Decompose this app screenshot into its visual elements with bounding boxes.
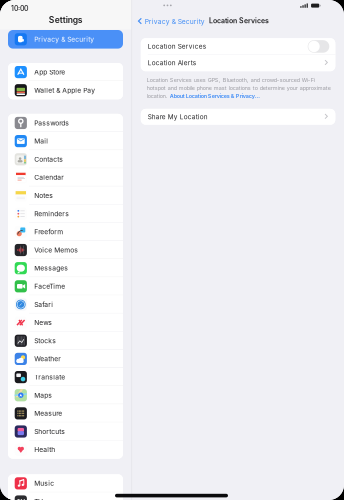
button[interactable]: Shortcuts <box>8 422 123 441</box>
staticText: News <box>34 319 52 327</box>
button[interactable]: Maps <box>8 386 123 404</box>
staticText: Voice Memos <box>34 246 78 254</box>
staticText: Settings <box>49 15 83 25</box>
staticText: Calendar <box>34 173 64 181</box>
button[interactable]: Contacts <box>8 150 123 168</box>
button[interactable]: Privacy & Security <box>8 30 123 49</box>
staticText: Location Alerts <box>148 59 196 67</box>
staticText: Mail <box>34 137 48 145</box>
button[interactable]: Freeform <box>8 223 123 241</box>
staticText: Location Services uses GPS, Bluetooth, a… <box>147 77 315 83</box>
button[interactable]: Location Services <box>141 38 335 55</box>
button[interactable]: Privacy & Security <box>138 16 205 27</box>
button[interactable]: Location Alerts <box>141 55 335 71</box>
staticText: Shortcuts <box>34 427 65 436</box>
staticText: Translate <box>34 373 65 381</box>
button[interactable]: Reminders <box>8 205 123 223</box>
staticText: Reminders <box>34 210 69 218</box>
staticText: Location Services <box>148 43 206 50</box>
staticText: Health <box>34 446 55 454</box>
button[interactable]: Passwords <box>8 114 123 132</box>
button[interactable]: Music <box>8 474 123 492</box>
button[interactable]: App Store <box>8 63 123 81</box>
button[interactable]: Stocks <box>8 332 123 350</box>
staticText: Privacy & Security <box>34 35 94 43</box>
staticText: Measure <box>34 409 62 417</box>
button[interactable]: Calendar <box>8 168 123 186</box>
button[interactable]: Mail <box>8 132 123 150</box>
staticText: Weather <box>34 355 61 363</box>
staticText: Notes <box>34 191 53 200</box>
staticText: Passwords <box>34 119 69 127</box>
staticText: Location Services <box>209 16 269 25</box>
button[interactable]: Weather <box>8 350 123 368</box>
staticText: TV <box>17 498 25 500</box>
button[interactable]: TV <box>8 492 123 500</box>
staticText: location. <box>147 93 170 99</box>
button[interactable]: Translate <box>8 368 123 386</box>
staticText: Privacy & Security <box>145 18 205 26</box>
staticText: Messages <box>34 264 68 272</box>
button[interactable]: Notes <box>8 186 123 205</box>
staticText: Safari <box>34 300 53 308</box>
button[interactable]: Health <box>8 441 123 459</box>
button[interactable]: About Location Services & Privacy… <box>170 93 260 99</box>
staticText: hotspot and mobile phone mast locations … <box>147 85 331 91</box>
staticText: TV <box>34 497 43 500</box>
button[interactable]: Safari <box>8 295 123 313</box>
button[interactable]: Measure <box>8 404 123 422</box>
button[interactable]: Share My Location <box>141 109 335 125</box>
staticText: Music <box>34 479 54 487</box>
button[interactable]: News <box>8 314 123 332</box>
button[interactable]: Messages <box>8 259 123 277</box>
button[interactable]: FaceTime <box>8 277 123 295</box>
staticText: Freeform <box>34 228 63 236</box>
staticText: FaceTime <box>34 282 65 290</box>
staticText: About Location Services & Privacy… <box>170 93 260 99</box>
staticText: App Store <box>34 68 65 76</box>
staticText: Stocks <box>34 337 56 345</box>
staticText: Maps <box>34 391 52 399</box>
staticText: Wallet & Apple Pay <box>34 86 95 94</box>
staticText: Contacts <box>34 155 63 163</box>
staticText: Share My Location <box>148 113 208 121</box>
button[interactable]: Voice Memos <box>8 241 123 259</box>
staticText: 10:00 <box>11 4 28 13</box>
button[interactable]: Wallet & Apple Pay <box>8 81 123 99</box>
